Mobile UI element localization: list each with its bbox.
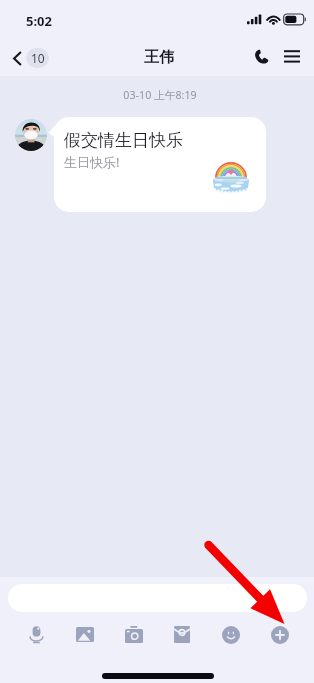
button[interactable]: Red packet (166, 618, 198, 651)
button[interactable]: 假交情生日快乐 (54, 117, 266, 212)
staticText: 03-10 上午8:19 (6, 88, 314, 103)
staticText: 5:02 (26, 12, 52, 30)
button[interactable]: Camera (118, 618, 150, 651)
staticText: 假交情生日快乐 (64, 130, 183, 151)
button[interactable]: Photos (69, 618, 101, 651)
button[interactable]: Message input (8, 584, 307, 612)
button[interactable]: Emoji (215, 618, 247, 651)
button[interactable]: Menu (280, 44, 304, 68)
button[interactable]: Back (9, 45, 53, 71)
button[interactable]: Voice message (20, 618, 52, 651)
button[interactable]: Call (249, 44, 274, 69)
staticText: 王伟 (144, 48, 174, 67)
staticText: 10 (31, 50, 45, 66)
staticText: 生日快乐! (64, 153, 120, 171)
button[interactable]: More (264, 618, 296, 651)
